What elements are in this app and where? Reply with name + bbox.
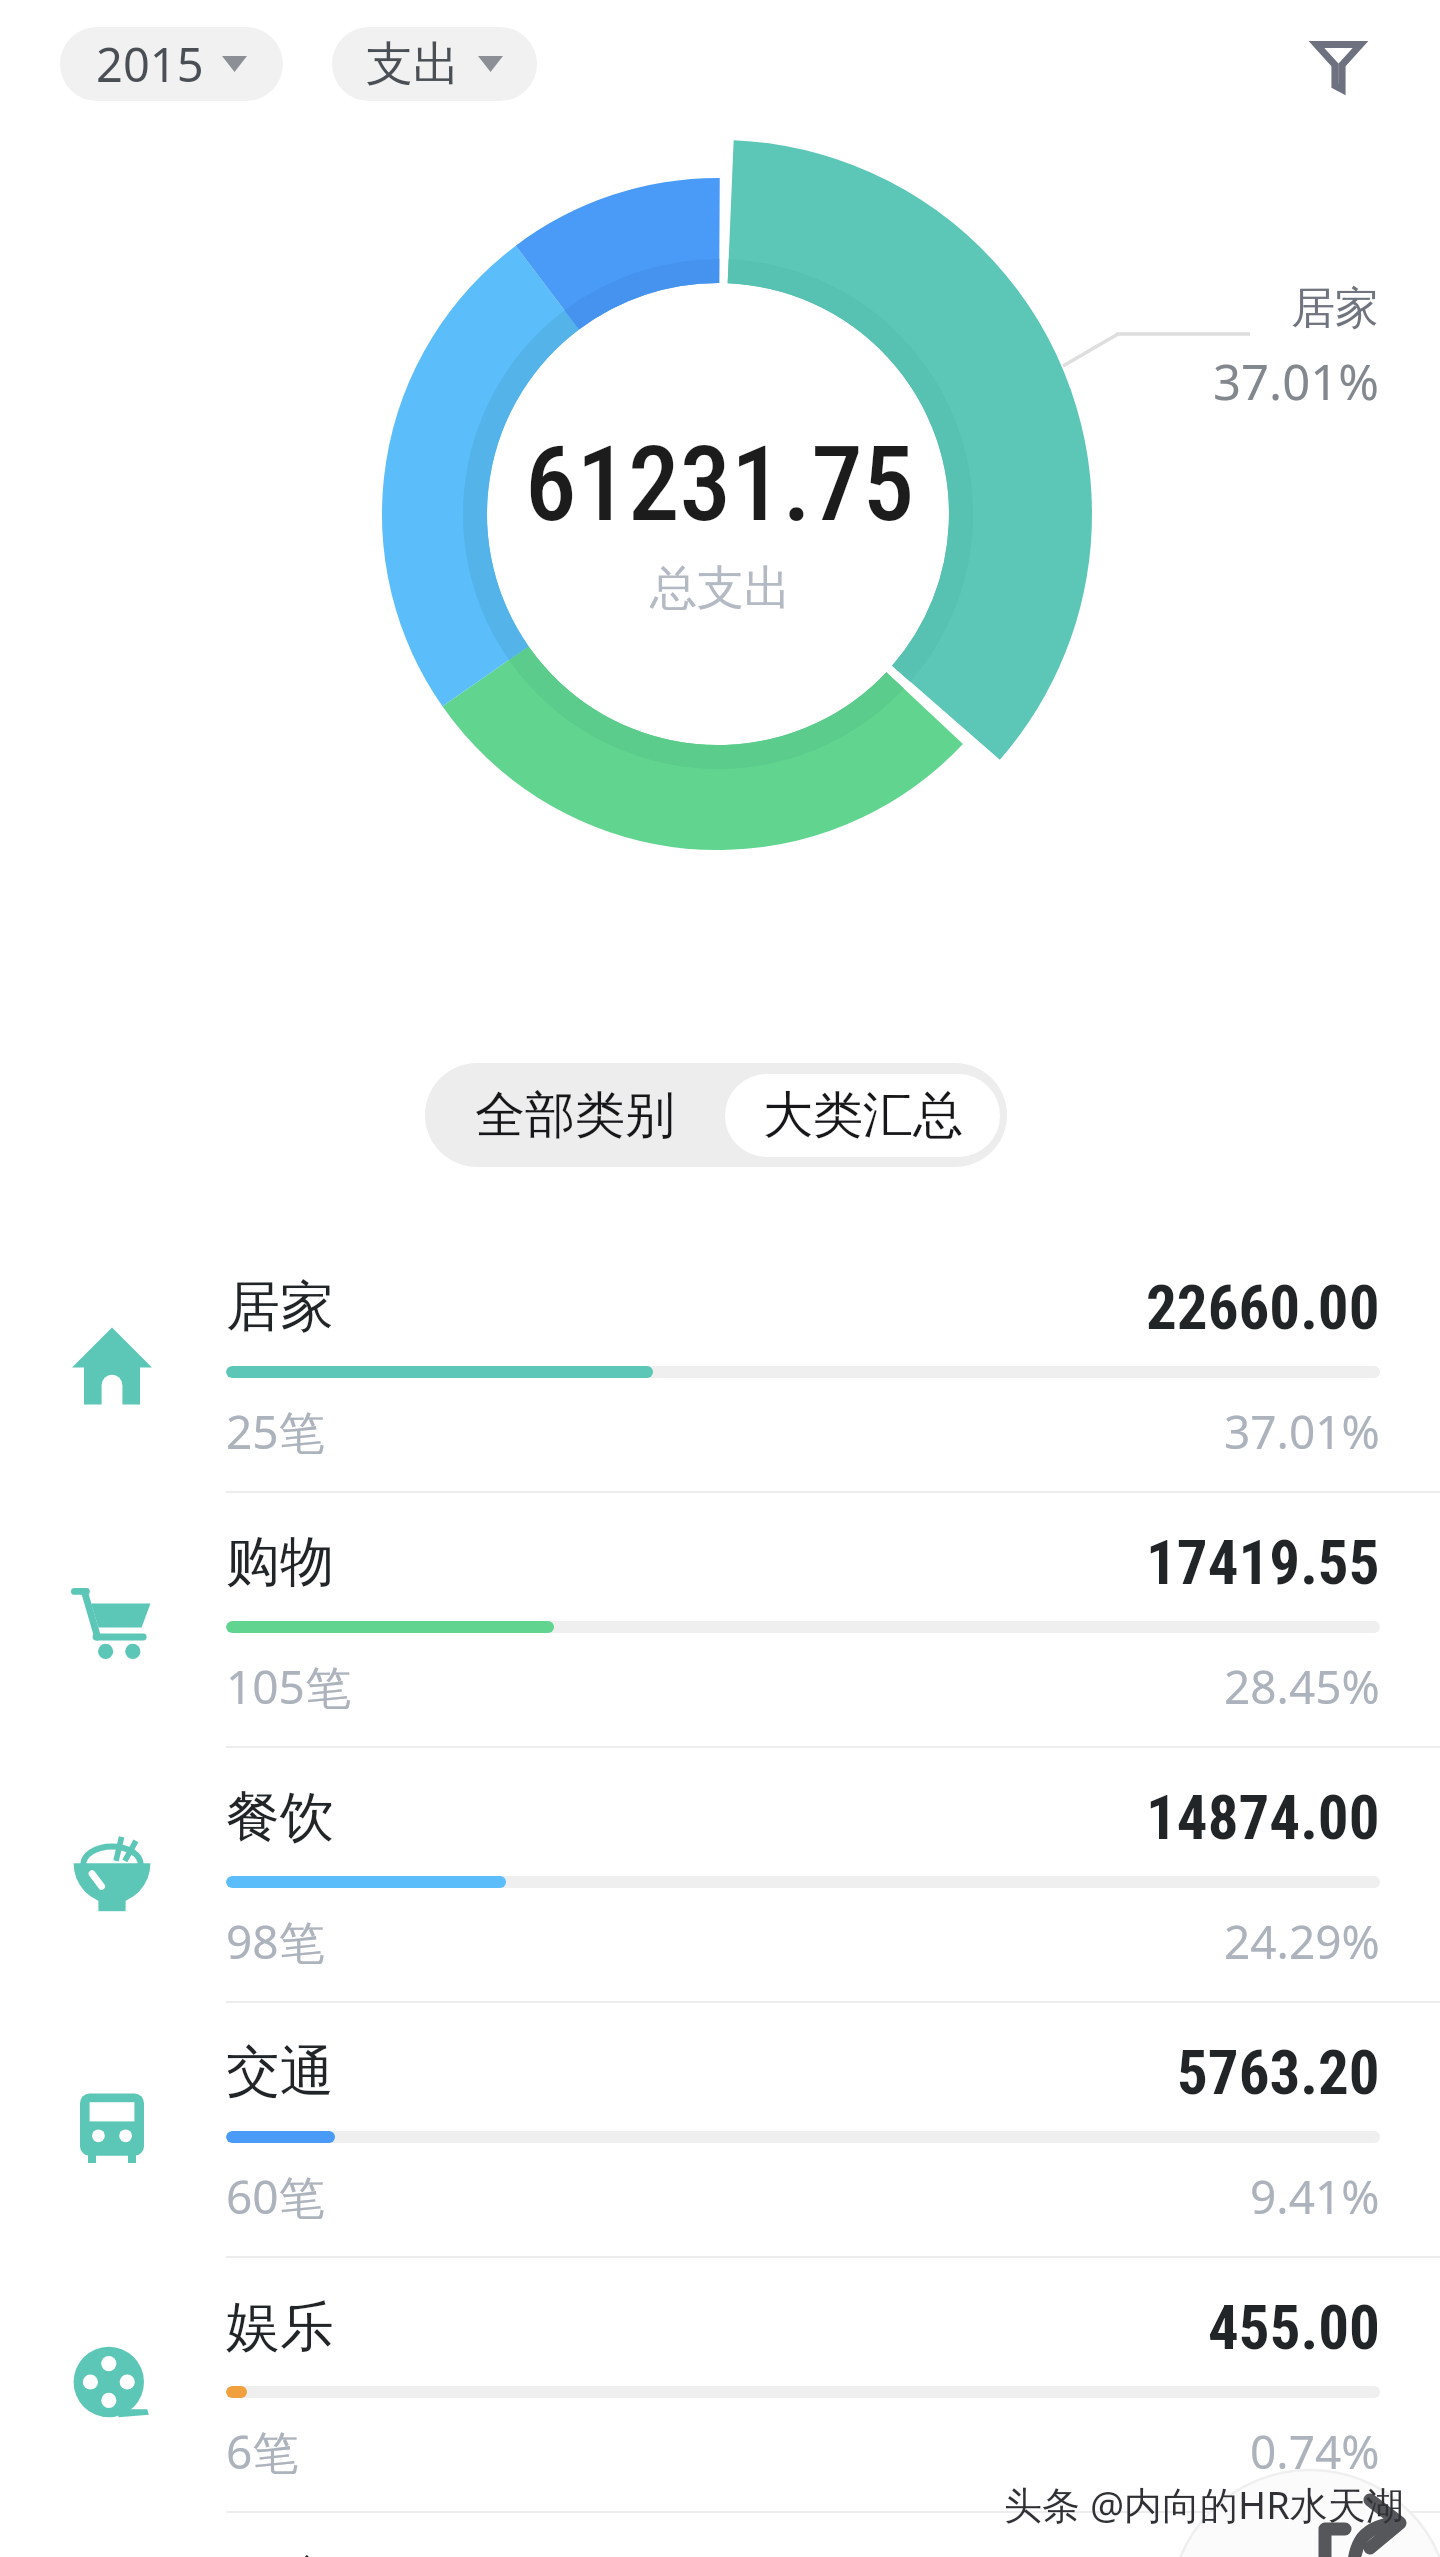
button[interactable]: 医疗 <box>0 2511 1440 2557</box>
staticText: 娱乐 <box>226 2293 334 2361</box>
staticText: 61231.75 <box>525 424 915 545</box>
staticText: 17419.55 <box>1146 1527 1380 1598</box>
button[interactable]: 娱乐 <box>0 2256 1440 2511</box>
staticText: 5763.20 <box>1177 2037 1380 2108</box>
staticText: 9.41% <box>1250 2165 1380 2228</box>
staticText: 总支出 <box>650 559 791 618</box>
staticText: 支出 <box>366 35 460 94</box>
staticText: 医疗 <box>226 2548 334 2557</box>
staticText: 98笔 <box>226 1910 325 1973</box>
staticText: 60笔 <box>226 2165 325 2228</box>
button[interactable]: 购物 <box>0 1491 1440 1746</box>
button[interactable]: 大类汇总 <box>725 1074 1000 1157</box>
staticText: 购物 <box>226 1528 334 1596</box>
staticText: 餐饮 <box>226 1783 334 1851</box>
staticText: 头条 @内向的HR水天湖 <box>1004 2478 1404 2530</box>
staticText: 14874.00 <box>1146 1782 1380 1853</box>
staticText: 37.01% <box>1224 1400 1380 1463</box>
staticText: 0.74% <box>1250 2420 1380 2483</box>
button[interactable]: 交通 <box>0 2001 1440 2256</box>
button[interactable]: 支出 <box>332 27 537 101</box>
button[interactable]: 餐饮 <box>0 1746 1440 2001</box>
staticText: 59.00 <box>1238 2547 1380 2557</box>
staticText: 全部类别 <box>475 1084 675 1147</box>
button[interactable]: 全部类别 <box>425 1063 725 1167</box>
button[interactable]: Share <box>1180 2480 1440 2557</box>
button[interactable]: 居家 <box>0 1236 1440 1491</box>
staticText: 大类汇总 <box>763 1084 963 1147</box>
staticText: 25笔 <box>226 1400 325 1463</box>
staticText: 28.45% <box>1224 1655 1380 1718</box>
staticText: 6笔 <box>226 2420 299 2483</box>
staticText: 2015 <box>96 32 204 96</box>
staticText: 24.29% <box>1224 1910 1380 1973</box>
staticText: 居家 <box>226 1273 334 1341</box>
button[interactable]: 2015 <box>60 27 283 101</box>
staticText: 居家 <box>1291 281 1379 336</box>
button[interactable]: Filter <box>1288 17 1388 117</box>
staticText: 22660.00 <box>1146 1272 1380 1343</box>
staticText: 455.00 <box>1208 2292 1380 2363</box>
staticText: 105笔 <box>226 1655 351 1718</box>
staticText: 交通 <box>226 2038 334 2106</box>
staticText: 37.01% <box>1213 348 1379 415</box>
